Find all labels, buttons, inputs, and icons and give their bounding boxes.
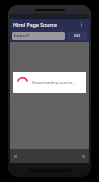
button[interactable]: https://www.google.com	[12, 32, 65, 40]
staticText: Downloading source...	[32, 80, 82, 86]
button[interactable]: Recents	[80, 153, 87, 160]
button[interactable]: Downloading source...	[13, 72, 86, 93]
button[interactable]: Back	[12, 153, 19, 160]
button[interactable]: More options	[77, 20, 86, 29]
button[interactable]: GO	[67, 32, 87, 40]
staticText: https://www.google.com	[14, 33, 63, 39]
staticText: Html Page Source	[13, 21, 77, 28]
staticText: GO	[74, 33, 81, 39]
